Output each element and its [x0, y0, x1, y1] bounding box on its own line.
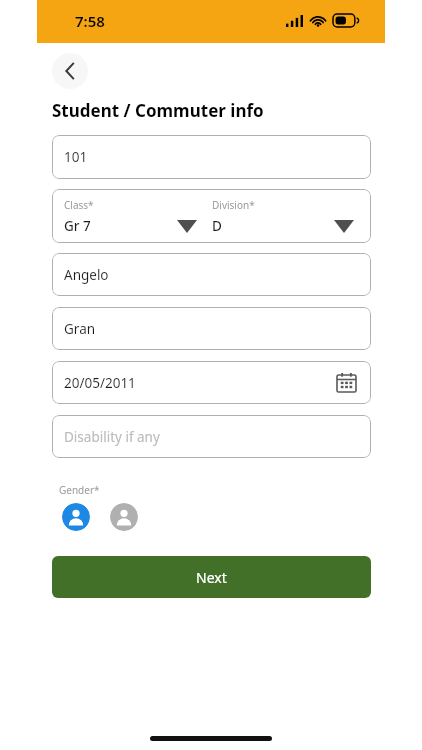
staticText: 7:58: [75, 11, 105, 31]
button[interactable]: Male: [62, 503, 90, 531]
staticText: Next: [196, 568, 227, 587]
button[interactable]: Gran: [52, 307, 371, 350]
staticText: Division*: [212, 198, 255, 212]
staticText: Student / Commuter info: [52, 99, 264, 122]
staticText: Disability if any: [64, 428, 160, 446]
staticText: Angelo: [64, 266, 109, 284]
button[interactable]: Back: [52, 53, 88, 89]
button[interactable]: Disability if any: [52, 415, 371, 458]
staticText: 101: [64, 148, 88, 166]
staticText: Gender*: [59, 483, 100, 497]
staticText: Class*: [64, 198, 94, 212]
staticText: D: [212, 217, 222, 235]
button[interactable]: Next: [52, 556, 371, 598]
staticText: 20/05/2011: [64, 374, 136, 392]
button[interactable]: 101: [52, 135, 371, 179]
button[interactable]: Division*: [212, 189, 371, 243]
button[interactable]: Class*: [52, 189, 212, 243]
staticText: Gr 7: [64, 217, 91, 235]
staticText: Gran: [64, 320, 96, 338]
button[interactable]: Angelo: [52, 253, 371, 296]
button[interactable]: 20/05/2011: [52, 361, 371, 404]
button[interactable]: Female: [110, 503, 138, 531]
